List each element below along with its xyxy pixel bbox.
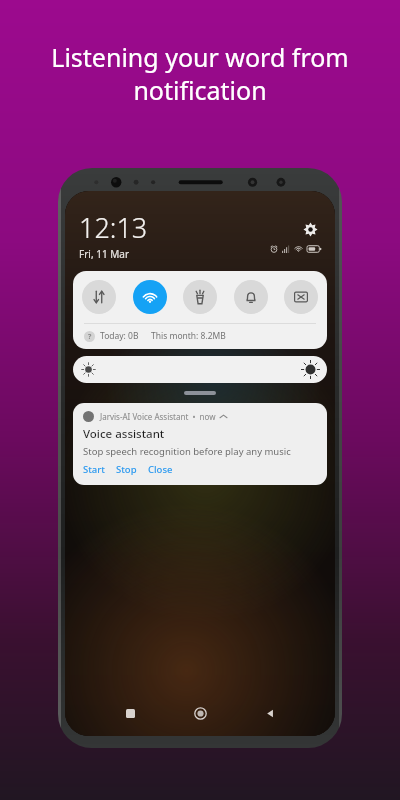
staticText: Stop speech recognition before play any … bbox=[83, 445, 291, 458]
staticText: Fri, 11 Mar bbox=[79, 247, 130, 261]
button[interactable]: Settings bbox=[299, 218, 321, 240]
button[interactable]: Flashlight bbox=[183, 280, 217, 314]
staticText: Start bbox=[83, 463, 105, 476]
staticText: Jarvis-AI Voice Assistant • now bbox=[100, 411, 216, 422]
staticText: Stop bbox=[116, 463, 137, 476]
button[interactable]: Jarvis-AI Voice Assistant • now bbox=[73, 403, 327, 485]
button[interactable]: Home bbox=[187, 700, 213, 726]
button[interactable]: Stop bbox=[116, 463, 137, 476]
button[interactable]: Back bbox=[257, 700, 283, 726]
button[interactable]: Recents bbox=[117, 700, 143, 726]
button[interactable]: Mobile data bbox=[82, 280, 116, 314]
staticText: 12:13 bbox=[79, 209, 148, 246]
staticText: Listening your word from notification bbox=[18, 40, 382, 107]
staticText: This month: 8.2MB bbox=[151, 330, 226, 342]
button[interactable]: Brightness bbox=[73, 356, 327, 383]
staticText: ? bbox=[88, 332, 92, 342]
staticText: Today: 0B bbox=[100, 330, 139, 342]
button[interactable]: Wi-Fi bbox=[133, 280, 167, 314]
button[interactable]: Ring mode bbox=[234, 280, 268, 314]
staticText: Voice assistant bbox=[83, 426, 165, 442]
staticText: Close bbox=[148, 463, 173, 476]
button[interactable]: Close bbox=[148, 463, 173, 476]
button[interactable]: Start bbox=[83, 463, 105, 476]
button[interactable]: Cast bbox=[284, 280, 318, 314]
